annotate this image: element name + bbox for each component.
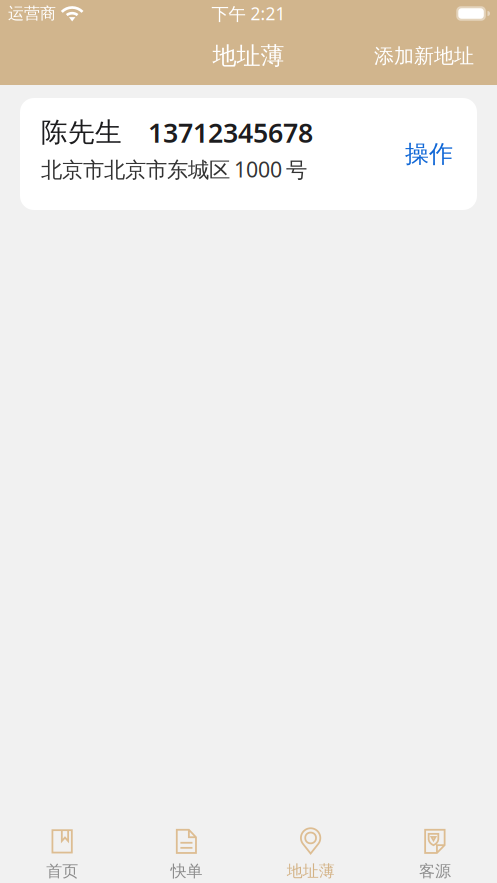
button[interactable]: 添加新地址 bbox=[356, 33, 497, 79]
staticText: 陈先生 bbox=[41, 116, 122, 149]
button[interactable]: 首页 bbox=[0, 815, 124, 883]
staticText: 下午 2:21 bbox=[211, 2, 285, 25]
staticText: 北京市北京市东城区 1000 号 bbox=[41, 155, 307, 183]
staticText: 添加新地址 bbox=[374, 44, 474, 68]
staticText: 地址薄 bbox=[287, 861, 335, 881]
staticText: 地址薄 bbox=[212, 41, 284, 71]
staticText: 客源 bbox=[419, 861, 451, 881]
button[interactable]: 陈先生 bbox=[20, 98, 477, 210]
button[interactable]: 快单 bbox=[124, 815, 248, 883]
staticText: 13712345678 bbox=[148, 115, 313, 150]
button[interactable]: 地址薄 bbox=[248, 815, 373, 883]
button[interactable]: 操作 bbox=[397, 125, 461, 183]
button[interactable]: 客源 bbox=[373, 815, 497, 883]
staticText: 操作 bbox=[405, 139, 453, 169]
staticText: 快单 bbox=[170, 861, 202, 881]
staticText: 首页 bbox=[46, 861, 78, 881]
staticText: 运营商 bbox=[8, 4, 56, 23]
